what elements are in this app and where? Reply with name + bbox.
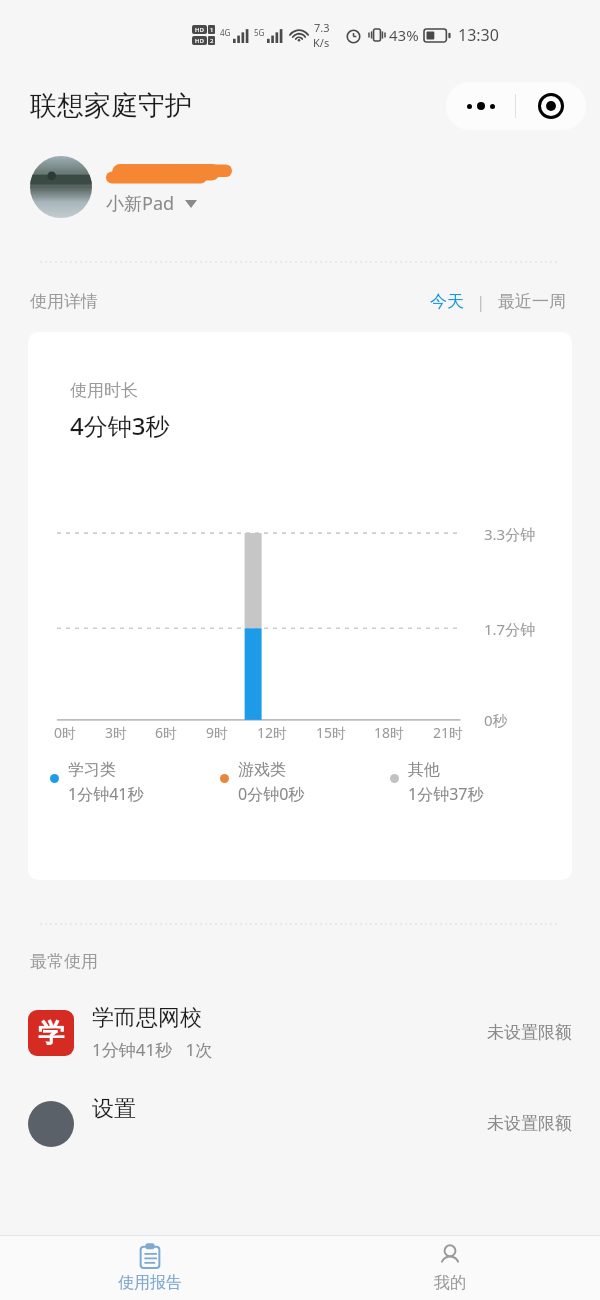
staticText: 1分钟41秒 1次 — [92, 1038, 213, 1061]
staticText: 0分钟0秒 — [238, 783, 305, 805]
button[interactable]: 游戏类 — [220, 760, 390, 805]
staticText: 12时 — [257, 723, 288, 742]
staticText: 使用时长 — [70, 380, 138, 401]
staticText: 43% — [389, 25, 419, 45]
button[interactable]: 最近一周 — [494, 289, 570, 314]
staticText: 7.3 — [314, 20, 330, 35]
staticText: HD — [195, 37, 204, 45]
staticText: 最近一周 — [498, 291, 566, 312]
button[interactable]: 设置 — [0, 1095, 600, 1152]
button[interactable]: 其他 — [390, 760, 560, 805]
staticText: 18时 — [374, 723, 405, 742]
staticText: 今天 — [430, 291, 464, 312]
staticText: 使用报告 — [118, 1273, 182, 1293]
staticText: 游戏类 — [238, 760, 286, 780]
staticText: 13:30 — [458, 24, 499, 46]
staticText: 6时 — [155, 723, 178, 742]
staticText: 联想家庭守护 — [30, 89, 192, 123]
staticText: 1分钟41秒 — [68, 783, 144, 805]
staticText: | — [468, 291, 494, 313]
button[interactable]: Close — [516, 82, 586, 130]
staticText: 9时 — [206, 723, 229, 742]
staticText: 0时 — [54, 723, 77, 742]
staticText: 我的 — [434, 1273, 466, 1293]
staticText: 小新Pad — [106, 191, 175, 216]
staticText: 4分钟3秒 — [70, 409, 170, 442]
staticText: 3.3分钟 — [484, 524, 536, 544]
staticText: 1分钟37秒 — [408, 783, 484, 805]
button[interactable]: 使用报告 — [0, 1236, 300, 1300]
staticText: 15时 — [316, 723, 347, 742]
button[interactable]: 今天 — [426, 289, 468, 314]
button[interactable]: 使用时长 — [28, 332, 572, 880]
staticText: 其他 — [408, 760, 440, 780]
staticText: 21时 — [433, 723, 464, 742]
staticText: 5G — [254, 27, 265, 38]
staticText: HD — [195, 26, 204, 34]
staticText: 学而思网校 — [92, 1004, 202, 1032]
staticText: 使用详情 — [30, 291, 98, 312]
staticText: 未设置限额 — [487, 1113, 572, 1134]
button[interactable]: 学 — [0, 1000, 600, 1065]
staticText: 最常使用 — [30, 951, 98, 972]
button[interactable]: 我的 — [300, 1236, 600, 1300]
staticText: 未设置限额 — [487, 1022, 572, 1043]
staticText: 设置 — [92, 1095, 136, 1123]
staticText: 学习类 — [68, 760, 116, 780]
staticText: 学 — [38, 1017, 64, 1050]
staticText: 4G — [220, 27, 231, 38]
staticText: 0秒 — [484, 710, 508, 730]
button[interactable]: 小新Pad — [30, 156, 600, 218]
staticText: K/s — [313, 35, 330, 50]
button[interactable]: 学习类 — [50, 760, 220, 805]
button[interactable]: More — [446, 82, 515, 130]
staticText: 2 — [210, 37, 214, 45]
staticText: 1 — [210, 26, 214, 34]
staticText: 3时 — [105, 723, 128, 742]
staticText: 1.7分钟 — [484, 619, 536, 639]
